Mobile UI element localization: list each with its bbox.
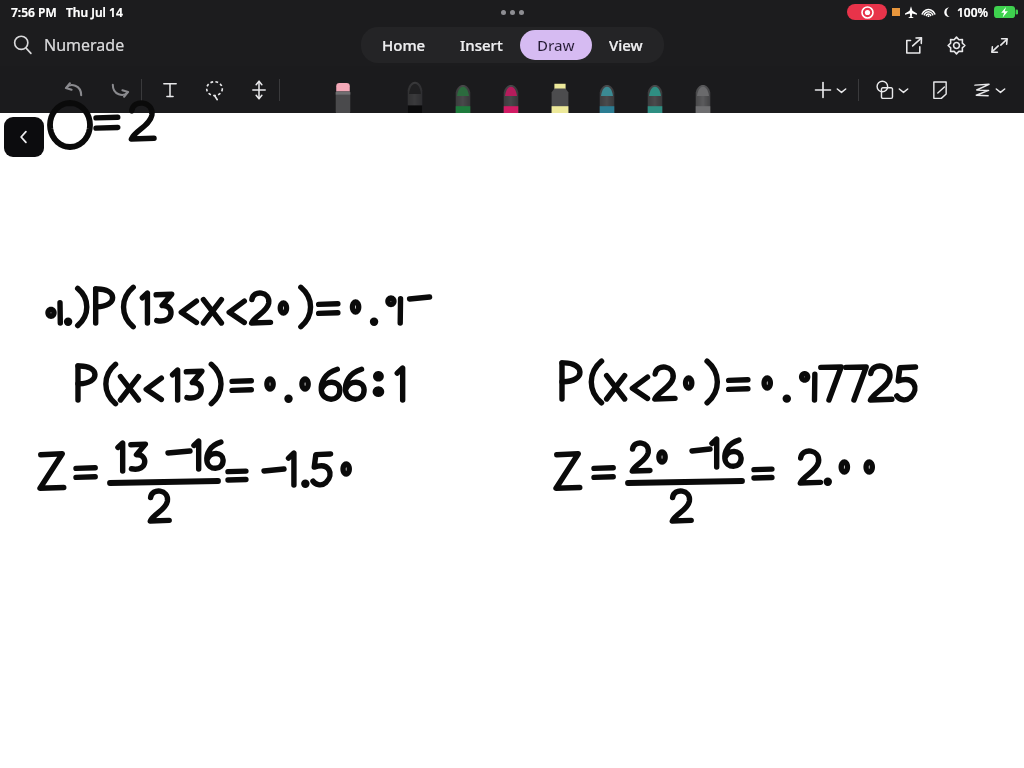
button[interactable]: Sticky note: [929, 79, 951, 101]
staticText: Draw: [537, 35, 575, 55]
button[interactable]: Insert: [443, 30, 520, 60]
button[interactable]: Settings: [946, 35, 967, 56]
button[interactable]: Green pencil: [450, 79, 476, 113]
button[interactable]: Numerade: [44, 34, 125, 56]
staticText: View: [609, 35, 643, 55]
button[interactable]: Add: [812, 79, 834, 101]
button[interactable]: Draw: [520, 30, 592, 60]
button[interactable]: Lasso select: [203, 79, 226, 102]
button[interactable]: Undo: [62, 78, 86, 102]
button[interactable]: More add options: [834, 83, 849, 98]
staticText: 100%: [957, 4, 989, 20]
button[interactable]: View: [592, 30, 660, 60]
staticText: Insert: [460, 35, 503, 55]
button[interactable]: Shapes: [874, 79, 896, 101]
button[interactable]: Teal pen: [642, 79, 668, 113]
button[interactable]: Search: [12, 34, 34, 56]
button[interactable]: Redo: [108, 78, 132, 102]
button[interactable]: Insert space: [248, 79, 270, 101]
button[interactable]: Collapse: [989, 35, 1010, 56]
button[interactable]: Black pen: [402, 75, 428, 113]
button[interactable]: Back: [4, 117, 44, 157]
button[interactable]: Pink pen: [498, 79, 524, 113]
button[interactable]: Home: [365, 30, 443, 60]
button[interactable]: Text: [159, 79, 181, 101]
button[interactable]: More shapes: [896, 83, 911, 98]
staticText: 7:56 PM Thu Jul 14: [11, 4, 123, 20]
button[interactable]: Ink to shape: [971, 79, 993, 101]
button[interactable]: Blue pen: [594, 79, 620, 113]
staticText: Home: [382, 35, 426, 55]
button[interactable]: Share: [903, 35, 924, 56]
button[interactable]: More ink options: [993, 83, 1008, 98]
button[interactable]: Eraser: [330, 79, 356, 113]
button[interactable]: Grey pen: [690, 79, 716, 113]
button[interactable]: Yellow highlighter: [546, 79, 574, 113]
